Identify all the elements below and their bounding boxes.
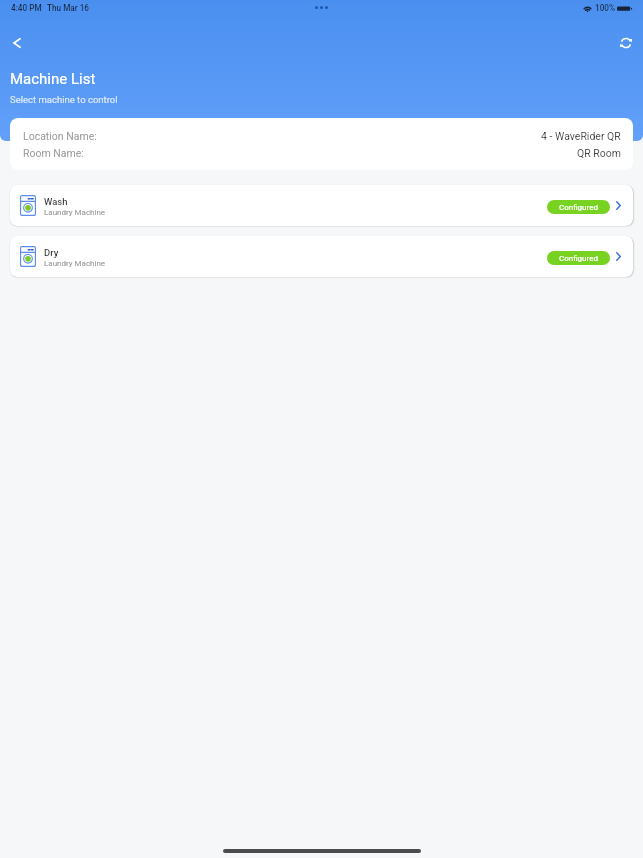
staticText: Machine List — [10, 70, 96, 88]
staticText: Select machine to control — [10, 94, 118, 105]
staticText: 100% — [595, 3, 615, 13]
staticText: QR Room — [577, 147, 621, 159]
button[interactable]: Wash — [10, 185, 633, 226]
staticText: Thu Mar 16 — [47, 3, 89, 13]
staticText: 4 - WaveRider QR — [541, 130, 621, 142]
staticText: Laundry Machine — [44, 259, 106, 268]
staticText: Configured — [559, 254, 598, 263]
button[interactable]: Refresh — [611, 28, 640, 57]
staticText: Configured — [559, 203, 598, 212]
staticText: Room Name: — [23, 147, 84, 159]
staticText: Laundry Machine — [44, 208, 106, 217]
button[interactable]: Dry — [10, 236, 633, 277]
staticText: Location Name: — [23, 130, 97, 142]
staticText: Wash — [44, 196, 68, 207]
button[interactable]: Back — [2, 28, 31, 57]
staticText: Dry — [44, 247, 59, 258]
staticText: 4:40 PM — [11, 3, 42, 13]
